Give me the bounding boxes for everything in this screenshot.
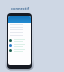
button[interactable]	[8, 16, 31, 23]
button[interactable]	[9, 38, 31, 42]
staticText: connectify	[10, 6, 30, 11]
button[interactable]	[9, 43, 31, 47]
button[interactable]: connectify	[10, 6, 30, 11]
button[interactable]	[9, 48, 31, 52]
